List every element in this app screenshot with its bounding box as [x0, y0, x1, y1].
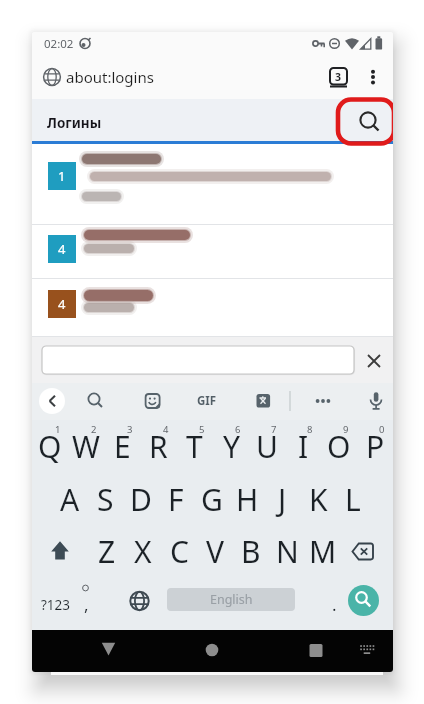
button[interactable]: O [321, 420, 357, 473]
staticText: 2 [91, 423, 97, 435]
button[interactable] [42, 346, 354, 374]
button[interactable] [348, 585, 379, 616]
staticText: P [366, 426, 385, 467]
button[interactable] [32, 225, 393, 278]
staticText: O [327, 426, 351, 467]
staticText: L [345, 479, 361, 520]
staticText: Z [98, 531, 116, 572]
button[interactable]: F [158, 473, 194, 526]
staticText: 7 [271, 423, 277, 435]
staticText: 4 [163, 423, 169, 435]
button[interactable] [299, 632, 333, 669]
staticText: R [149, 426, 168, 467]
button[interactable]: Q [32, 420, 68, 473]
staticText: . [332, 593, 337, 616]
staticText: 4 [58, 240, 66, 258]
button[interactable] [310, 388, 336, 414]
staticText: GIF [197, 393, 217, 409]
button[interactable] [44, 525, 82, 578]
button[interactable]: R [140, 420, 176, 473]
button[interactable]: E [104, 420, 140, 473]
button[interactable]: D [123, 473, 159, 526]
staticText: 3 [335, 70, 342, 84]
button[interactable] [363, 388, 389, 414]
button[interactable]: G [194, 473, 230, 526]
staticText: J [278, 479, 287, 520]
button[interactable]: U [249, 420, 285, 473]
staticText: U [256, 426, 278, 467]
staticText: 4 [58, 295, 66, 313]
button[interactable] [92, 632, 125, 669]
staticText: 1 [55, 423, 61, 435]
staticText: N [276, 531, 299, 572]
button[interactable] [117, 578, 151, 631]
button[interactable]: P [357, 420, 393, 473]
button[interactable]: B [233, 525, 269, 578]
button[interactable]: A [52, 473, 88, 526]
button[interactable]: 4 [48, 235, 76, 263]
button[interactable]: . [320, 578, 348, 631]
staticText: English [210, 591, 253, 608]
staticText: H [236, 479, 259, 520]
staticText: F [168, 479, 184, 520]
staticText: A [60, 479, 80, 520]
button[interactable]: English [167, 588, 295, 611]
staticText: I [298, 426, 309, 467]
staticText: 9 [343, 423, 349, 435]
staticText: K [309, 479, 328, 520]
staticText: Логины [47, 114, 102, 132]
staticText: B [241, 531, 261, 572]
button[interactable] [364, 351, 384, 371]
staticText: G [201, 479, 223, 520]
button[interactable]: GIF [194, 388, 220, 414]
button[interactable]: N [269, 525, 305, 578]
button[interactable] [353, 632, 382, 669]
button[interactable]: J [264, 473, 300, 526]
button[interactable]: W [68, 420, 104, 473]
staticText: 3 [127, 423, 133, 435]
button[interactable]: T [176, 420, 212, 473]
staticText: Q [38, 426, 62, 467]
staticText: , [84, 593, 89, 616]
button[interactable]: M [305, 525, 341, 578]
staticText: M [309, 531, 337, 572]
button[interactable] [362, 62, 386, 92]
staticText: V [206, 531, 224, 572]
button[interactable] [324, 62, 354, 92]
staticText: X [134, 531, 152, 572]
button[interactable]: Z [89, 525, 125, 578]
button[interactable]: Y [213, 420, 249, 473]
button[interactable] [39, 388, 65, 414]
button[interactable] [250, 388, 276, 414]
button[interactable]: V [197, 525, 233, 578]
staticText: S [97, 479, 114, 520]
button[interactable]: L [335, 473, 371, 526]
button[interactable]: , [72, 578, 100, 631]
button[interactable]: ?123 [37, 578, 75, 631]
staticText: C [170, 531, 189, 572]
button[interactable] [338, 99, 393, 144]
button[interactable]: I [285, 420, 321, 473]
button[interactable]: 1 [48, 162, 76, 190]
staticText: T [186, 426, 203, 467]
staticText: W [72, 426, 100, 467]
button[interactable]: 4 [48, 290, 76, 318]
button[interactable] [32, 279, 393, 336]
staticText: about:logins [66, 67, 154, 87]
button[interactable]: S [87, 473, 123, 526]
staticText: Y [223, 426, 240, 467]
button[interactable] [32, 144, 393, 224]
staticText: 8 [307, 423, 313, 435]
button[interactable] [346, 525, 384, 578]
button[interactable]: H [229, 473, 265, 526]
button[interactable]: K [300, 473, 336, 526]
staticText: ?123 [41, 596, 71, 614]
staticText: E [114, 426, 131, 467]
button[interactable]: X [125, 525, 161, 578]
button[interactable] [82, 388, 108, 414]
button[interactable] [195, 632, 229, 669]
button[interactable]: C [161, 525, 197, 578]
staticText: 5 [199, 423, 205, 435]
button[interactable] [140, 388, 166, 414]
staticText: 1 [58, 167, 66, 185]
